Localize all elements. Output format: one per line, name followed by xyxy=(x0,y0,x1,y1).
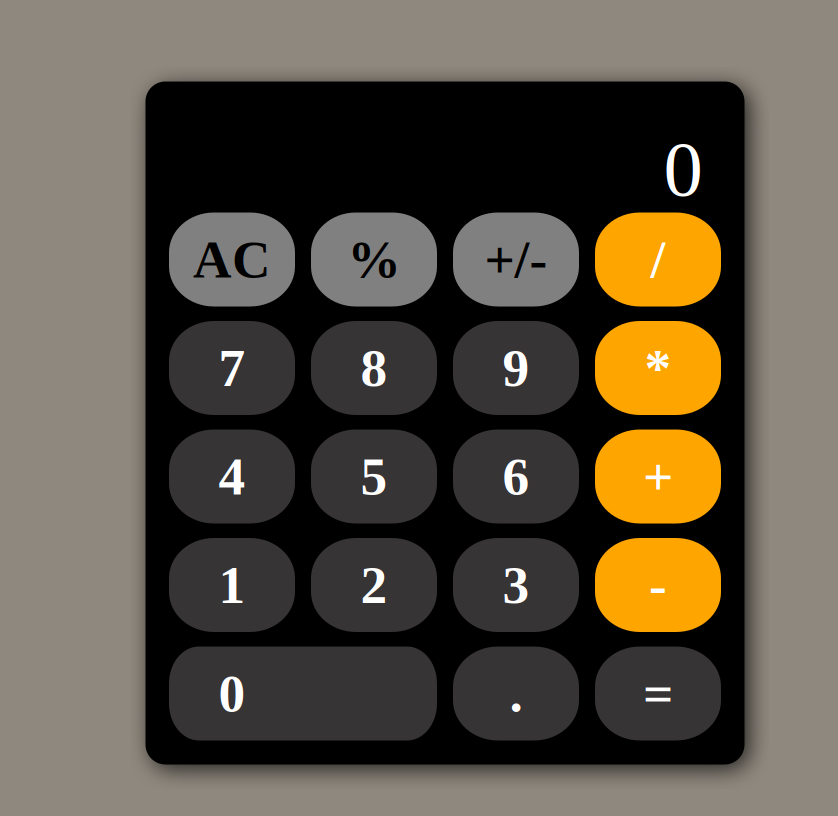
button[interactable]: AC xyxy=(169,212,295,306)
staticText: 2 xyxy=(360,555,387,615)
button[interactable]: 6 xyxy=(453,429,579,523)
button[interactable]: 8 xyxy=(311,321,437,415)
button[interactable]: = xyxy=(595,646,721,740)
staticText: . xyxy=(509,664,522,723)
button[interactable]: +/- xyxy=(453,212,579,306)
staticText: = xyxy=(643,664,673,723)
button[interactable]: + xyxy=(595,429,721,523)
staticText: 7 xyxy=(218,338,245,398)
button[interactable]: 1 xyxy=(169,538,295,632)
button[interactable]: % xyxy=(311,212,437,306)
staticText: 0 xyxy=(218,664,245,723)
button[interactable]: . xyxy=(453,646,579,740)
button[interactable]: 3 xyxy=(453,538,579,632)
staticText: 3 xyxy=(502,555,529,615)
button[interactable]: - xyxy=(595,538,721,632)
staticText: % xyxy=(347,230,400,289)
staticText: + xyxy=(643,447,673,506)
button[interactable]: / xyxy=(595,212,721,306)
staticText: / xyxy=(650,230,665,289)
staticText: - xyxy=(649,555,667,615)
button[interactable]: 0 xyxy=(169,646,437,740)
staticText: AC xyxy=(193,230,271,289)
staticText: 4 xyxy=(218,447,245,506)
button[interactable]: 4 xyxy=(169,429,295,523)
staticText: 5 xyxy=(360,447,387,506)
staticText: 8 xyxy=(360,338,387,398)
button[interactable]: * xyxy=(595,321,721,415)
button[interactable]: 2 xyxy=(311,538,437,632)
staticText: * xyxy=(644,338,671,398)
button[interactable]: 5 xyxy=(311,429,437,523)
button[interactable]: 9 xyxy=(453,321,579,415)
staticText: 9 xyxy=(502,338,529,398)
staticText: 0 xyxy=(663,125,702,212)
staticText: 1 xyxy=(218,555,245,615)
button[interactable]: 7 xyxy=(169,321,295,415)
staticText: 6 xyxy=(502,447,529,506)
staticText: +/- xyxy=(484,230,547,289)
